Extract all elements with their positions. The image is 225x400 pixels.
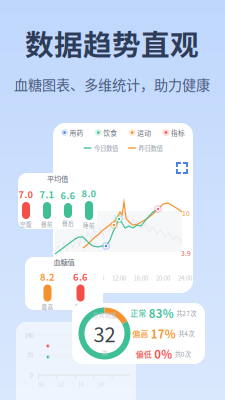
staticText: 8.2 bbox=[40, 270, 55, 283]
staticText: 共27次 bbox=[176, 308, 196, 318]
staticText: 3.9 bbox=[181, 248, 191, 258]
staticText: 00:00 bbox=[46, 274, 60, 282]
staticText: 18 bbox=[78, 380, 84, 388]
staticText: 17% bbox=[151, 325, 176, 342]
staticText: 空腹 bbox=[20, 220, 32, 228]
staticText: 70 bbox=[27, 351, 33, 359]
button[interactable]: 运动 bbox=[129, 128, 151, 137]
staticText: 6.6 bbox=[60, 188, 75, 202]
staticText: 20:00 bbox=[156, 274, 170, 282]
staticText: 餐前 bbox=[41, 220, 53, 228]
staticText: 偏低 bbox=[136, 348, 152, 360]
staticText: 总共测量 bbox=[92, 310, 116, 319]
staticText: 今日数值 bbox=[94, 143, 118, 153]
staticText: 06 bbox=[38, 380, 44, 388]
staticText: 0% bbox=[154, 346, 172, 362]
staticText: 7.0 bbox=[18, 187, 33, 201]
staticText: 运动 bbox=[137, 128, 151, 137]
staticText: 数据趋势直观 bbox=[25, 22, 199, 64]
staticText: 08:00 bbox=[90, 274, 104, 282]
button[interactable]: 用药 bbox=[61, 128, 83, 137]
staticText: 16:00 bbox=[134, 274, 148, 282]
staticText: 平均值 bbox=[47, 173, 68, 183]
staticText: 次 bbox=[101, 348, 107, 357]
staticText: 血糖图表、多维统计，助力健康 bbox=[14, 74, 210, 94]
staticText: 用药 bbox=[69, 128, 83, 137]
staticText: 最低 bbox=[74, 302, 86, 311]
staticText: 140 bbox=[24, 331, 33, 339]
staticText: 昨日数值 bbox=[138, 143, 162, 153]
button[interactable]: Fullscreen bbox=[176, 162, 188, 174]
button[interactable]: 指标 bbox=[162, 128, 185, 137]
staticText: 10 bbox=[182, 208, 190, 218]
staticText: 8.0 bbox=[81, 186, 96, 200]
staticText: 0 bbox=[29, 371, 32, 379]
staticText: 12 bbox=[58, 380, 64, 388]
staticText: 指标 bbox=[171, 128, 185, 137]
staticText: 饮食 bbox=[103, 128, 117, 137]
staticText: 12:00 bbox=[112, 274, 126, 282]
staticText: 24:00 bbox=[178, 274, 192, 282]
staticText: 共4次 bbox=[178, 329, 194, 338]
staticText: 04:00 bbox=[68, 274, 82, 282]
staticText: 83% bbox=[149, 305, 174, 321]
staticText: 6.6 bbox=[73, 270, 88, 283]
button[interactable]: 饮食 bbox=[95, 128, 117, 137]
staticText: 32 bbox=[93, 319, 115, 348]
staticText: 血糖值 bbox=[53, 256, 74, 267]
staticText: 睡前 bbox=[83, 221, 95, 229]
staticText: 偏高 bbox=[132, 328, 148, 339]
staticText: 24 bbox=[98, 380, 104, 388]
staticText: 正常 bbox=[130, 307, 146, 319]
staticText: 共0次 bbox=[175, 349, 191, 359]
staticText: 餐后 bbox=[62, 219, 74, 227]
staticText: 最高 bbox=[41, 302, 53, 311]
staticText: 7.1 bbox=[39, 187, 54, 201]
